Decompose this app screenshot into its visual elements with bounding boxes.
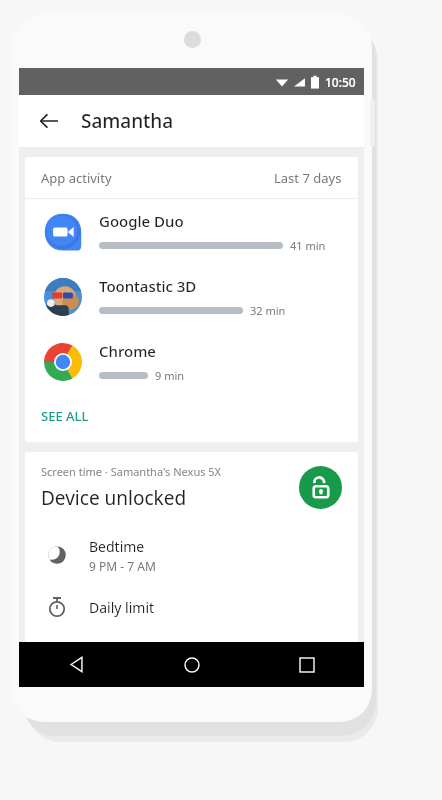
staticText: Device unlocked	[41, 485, 187, 511]
staticText: Toontastic 3D	[99, 276, 197, 296]
staticText: Daily limit	[89, 598, 155, 617]
staticText: App activity	[41, 169, 112, 187]
staticText: 32 min	[250, 303, 286, 318]
button[interactable]: SEE ALL	[25, 394, 358, 438]
button[interactable]: Chrome	[25, 329, 358, 394]
staticText: 41 min	[290, 238, 326, 253]
button[interactable]: Back	[29, 101, 69, 141]
staticText: Google Duo	[99, 211, 184, 231]
staticText: 9 min	[155, 368, 185, 383]
button[interactable]: Device unlocked	[299, 466, 342, 509]
staticText: 10:50	[325, 74, 356, 90]
staticText: Screen time · Samantha's Nexus 5X	[41, 464, 222, 479]
button[interactable]: Recent apps	[249, 642, 364, 687]
staticText: 9 PM - 7 AM	[89, 558, 156, 574]
button[interactable]: Daily limit	[25, 581, 358, 633]
staticText: Chrome	[99, 341, 156, 361]
staticText: Last 7 days	[274, 169, 342, 187]
staticText: Bedtime	[89, 537, 145, 556]
staticText: SEE ALL	[41, 407, 89, 425]
button[interactable]: Google Duo	[25, 199, 358, 264]
button[interactable]: Back	[19, 642, 134, 687]
staticText: Samantha	[81, 108, 174, 134]
button[interactable]: Toontastic 3D	[25, 264, 358, 329]
button[interactable]: Home	[134, 642, 249, 687]
button[interactable]: Bedtime	[25, 529, 358, 581]
